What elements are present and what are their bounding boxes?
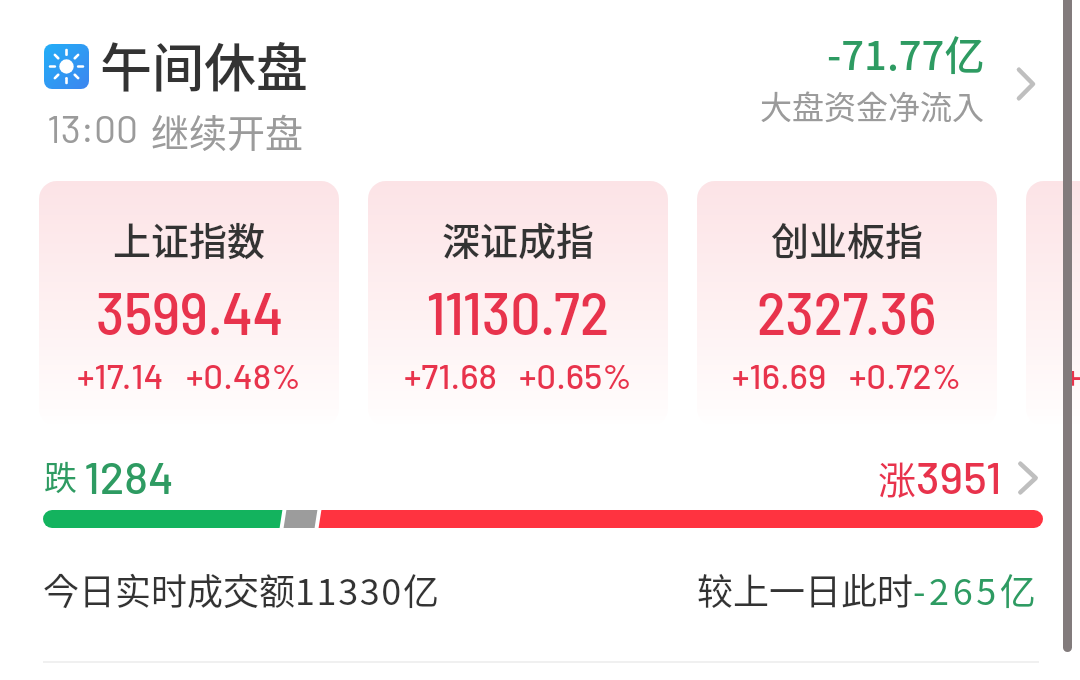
- staticText: +0.72%: [849, 354, 962, 396]
- staticText: 大盘资金净流入: [760, 82, 985, 128]
- staticText: 创业板指: [771, 211, 924, 266]
- button[interactable]: Capital flow detail: [1007, 57, 1041, 105]
- staticText: 2327.36: [757, 275, 937, 347]
- button[interactable]: 沪深300: [1026, 181, 1080, 426]
- staticText: 较上一日此时-265亿: [697, 563, 1040, 615]
- button[interactable]: Market breadth detail: [1016, 461, 1040, 495]
- staticText: +0.65%: [519, 354, 632, 396]
- button[interactable]: Midday break: [44, 44, 89, 89]
- staticText: +0.48%: [186, 354, 301, 396]
- staticText: +71.68: [404, 354, 497, 396]
- staticText: 涨: [878, 450, 917, 505]
- staticText: 深证成指: [442, 211, 595, 266]
- staticText: 继续开盘: [151, 103, 304, 158]
- staticText: 3951: [916, 449, 1002, 503]
- staticText: 13:00: [47, 104, 139, 151]
- button[interactable]: 创业板指: [697, 181, 997, 426]
- staticText: 1284: [84, 449, 174, 503]
- staticText: 11130.72: [427, 275, 609, 347]
- button[interactable]: 上证指数: [39, 181, 339, 426]
- button[interactable]: Market capital net inflow, go to detail: [600, 24, 1052, 136]
- staticText: 今日实时成交额11330亿: [43, 563, 439, 615]
- button[interactable]: 深证成指: [368, 181, 668, 426]
- staticText: 3599.44: [96, 275, 283, 347]
- staticText: -71.77亿: [827, 24, 985, 82]
- staticText: 跌: [44, 452, 77, 500]
- staticText: 上证指数: [113, 211, 266, 266]
- staticText: +16.69: [732, 354, 827, 396]
- staticText: 午间休盘: [100, 27, 309, 102]
- staticText: +21.45: [1064, 354, 1080, 396]
- staticText: +17.14: [77, 354, 164, 396]
